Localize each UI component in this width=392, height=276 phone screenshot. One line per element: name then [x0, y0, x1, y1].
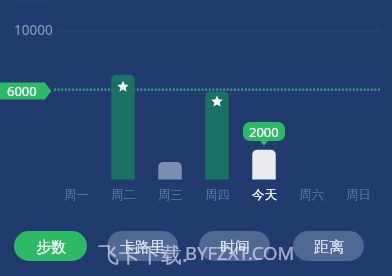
staticText: 距离: [314, 238, 344, 257]
staticText: 周日: [346, 187, 371, 203]
staticText: 时间: [220, 238, 250, 257]
staticText: 步数: [36, 238, 66, 257]
button[interactable]: 时间: [199, 231, 270, 261]
staticText: 周二: [111, 187, 136, 203]
staticText: 周四: [205, 187, 230, 203]
staticText: 2000: [249, 123, 279, 141]
staticText: 周三: [158, 187, 183, 203]
button[interactable]: 步数: [14, 231, 87, 261]
button[interactable]: 卡路里: [107, 231, 178, 261]
staticText: 飞卡下载.: [98, 240, 188, 269]
staticText: 周一: [64, 187, 89, 203]
staticText: 6000: [7, 82, 37, 100]
button[interactable]: 距离: [293, 231, 364, 261]
staticText: 卡路里: [120, 238, 165, 257]
staticText: 10000: [14, 21, 53, 39]
staticText: 今天: [252, 187, 277, 203]
staticText: BYFZXT.COM: [185, 240, 295, 265]
staticText: 周六: [299, 187, 324, 203]
